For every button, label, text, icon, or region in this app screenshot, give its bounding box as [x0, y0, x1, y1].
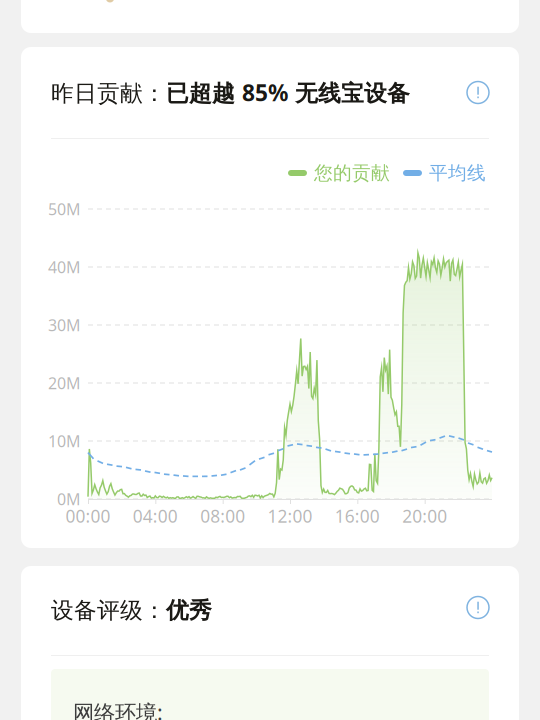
button[interactable]: 评级说明	[467, 596, 489, 618]
staticText: 50M	[48, 198, 81, 220]
button[interactable]: 贡献说明	[467, 81, 489, 103]
staticText: 16:00	[335, 504, 380, 527]
staticText: 昨日贡献：已超越 85% 无线宝设备	[51, 77, 410, 107]
staticText: 30M	[48, 314, 81, 336]
staticText: 00:00	[65, 504, 110, 527]
staticText: 网络环境:	[73, 698, 163, 720]
staticText: 08:00	[200, 504, 245, 527]
staticText: 20M	[48, 372, 81, 394]
staticText: 10M	[48, 430, 81, 452]
staticText: 平均线	[429, 161, 486, 184]
staticText: 04:00	[133, 504, 178, 527]
staticText: 12:00	[267, 504, 312, 527]
staticText: 您的贡献	[314, 161, 390, 184]
staticText: 0M	[57, 488, 81, 510]
staticText: 20:00	[402, 504, 447, 527]
staticText: 设备评级：优秀	[51, 597, 212, 624]
staticText: 40M	[48, 256, 81, 278]
